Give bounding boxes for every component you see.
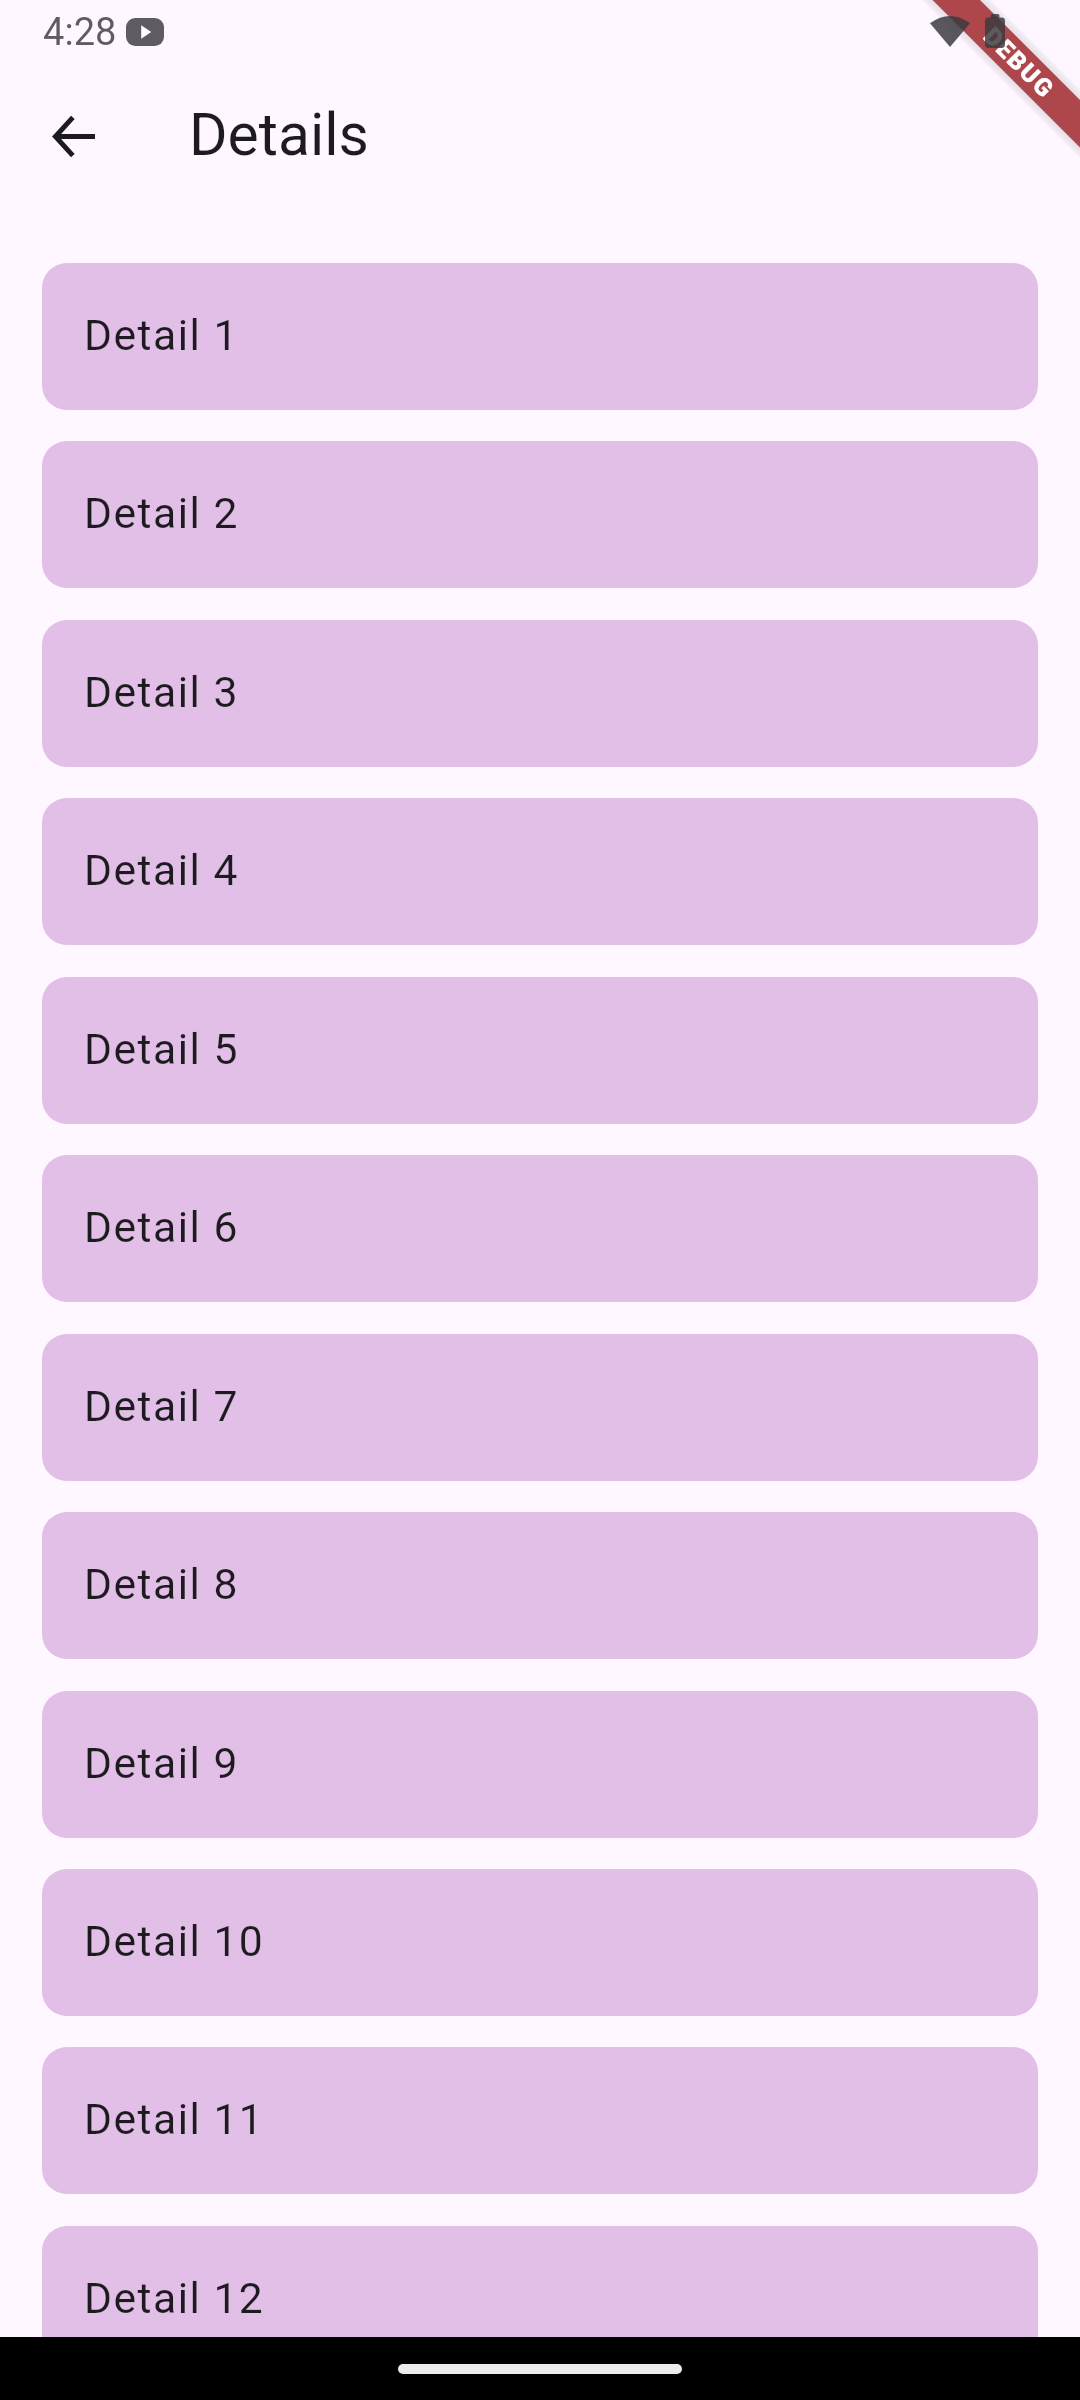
button[interactable]: Detail 4 <box>42 798 1038 945</box>
staticText: Detail 10 <box>84 1916 265 1966</box>
button[interactable]: Back <box>26 88 122 184</box>
staticText: Detail 1 <box>84 310 239 360</box>
staticText: Detail 6 <box>84 1202 239 1252</box>
staticText: Detail 3 <box>84 667 239 717</box>
staticText: Detail 12 <box>84 2273 265 2323</box>
button[interactable]: Detail 2 <box>42 441 1038 588</box>
button[interactable]: Detail 6 <box>42 1155 1038 1302</box>
button[interactable]: Detail 3 <box>42 620 1038 767</box>
staticText: Detail 4 <box>84 845 239 895</box>
button[interactable]: Detail 12 <box>42 2226 1038 2373</box>
button[interactable]: Detail 1 <box>42 263 1038 410</box>
staticText: Detail 5 <box>84 1024 239 1074</box>
staticText: Detail 2 <box>84 488 239 538</box>
button[interactable]: Detail 7 <box>42 1334 1038 1481</box>
staticText: Detail 8 <box>84 1559 239 1609</box>
staticText: Details <box>189 100 369 169</box>
button[interactable]: Detail 5 <box>42 977 1038 1124</box>
button[interactable]: Detail 9 <box>42 1691 1038 1838</box>
staticText: Detail 11 <box>84 2094 265 2144</box>
button[interactable]: Detail 10 <box>42 1869 1038 2016</box>
button[interactable]: Detail 11 <box>42 2047 1038 2194</box>
staticText: Detail 9 <box>84 1738 239 1788</box>
button[interactable]: Detail 8 <box>42 1512 1038 1659</box>
staticText: Detail 7 <box>84 1381 239 1431</box>
staticText: 4:28 <box>43 10 117 55</box>
